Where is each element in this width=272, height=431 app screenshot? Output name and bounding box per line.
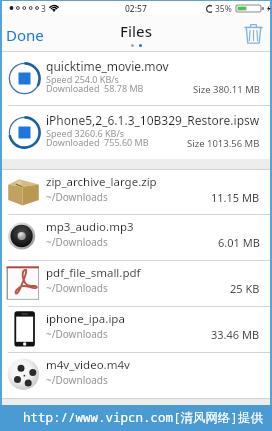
staticText: 02:57 xyxy=(125,3,147,15)
staticText: 3 xyxy=(41,3,46,15)
staticText: Speed 3260.6 KB/s xyxy=(46,127,125,139)
staticText: Downloaded 58.78 MB xyxy=(46,82,144,94)
staticText: Files xyxy=(120,21,152,41)
button[interactable]: m4v_video.m4v xyxy=(2,353,270,398)
button[interactable]: pdf_file_small.pdf xyxy=(2,261,270,306)
staticText: ~/Downloads xyxy=(46,327,108,341)
staticText: 33.46 MB xyxy=(211,327,260,342)
staticText: m4v_video.m4v xyxy=(46,357,130,373)
staticText: ~/Downloads xyxy=(46,281,108,295)
button[interactable]: iPhone5,2_6.1.3_10B329_Restore.ipsw xyxy=(2,106,270,159)
button[interactable]: mp3_audio.mp3 xyxy=(2,215,270,260)
staticText: Downloaded 755.60 MB xyxy=(46,136,149,148)
staticText: 25 KB xyxy=(230,281,260,296)
staticText: quicktime_movie.mov xyxy=(46,58,169,74)
staticText: ~/Downloads xyxy=(46,190,108,204)
staticText: Speed 254.0 KB/s xyxy=(46,73,119,85)
button[interactable]: zip_archive_large.zip xyxy=(2,170,270,214)
button[interactable]: Delete xyxy=(237,17,270,50)
staticText: pdf_file_small.pdf xyxy=(46,265,141,281)
staticText: ~/Downloads xyxy=(46,235,108,249)
staticText: iphone_ipa.ipa xyxy=(46,311,125,327)
staticText: iPhone5,2_6.1.3_10B329_Restore.ipsw xyxy=(46,112,260,128)
staticText: Done xyxy=(6,25,44,45)
button[interactable]: Done xyxy=(2,17,52,51)
staticText: Size 380.11 MB xyxy=(193,83,260,96)
staticText: 6.01 MB xyxy=(218,235,260,250)
staticText: mp3_audio.mp3 xyxy=(46,219,134,235)
staticText: ~/Downloads xyxy=(46,373,108,387)
staticText: Size 1013.56 MB xyxy=(187,137,260,150)
staticText: 11.15 MB xyxy=(211,190,260,205)
button[interactable]: quicktime_movie.mov xyxy=(2,52,270,105)
staticText: zip_archive_large.zip xyxy=(46,174,157,190)
staticText: 35% xyxy=(215,3,232,15)
staticText: http://www.vipcn.com[清风网络]提供 xyxy=(23,409,264,426)
button[interactable]: iphone_ipa.ipa xyxy=(2,307,270,352)
